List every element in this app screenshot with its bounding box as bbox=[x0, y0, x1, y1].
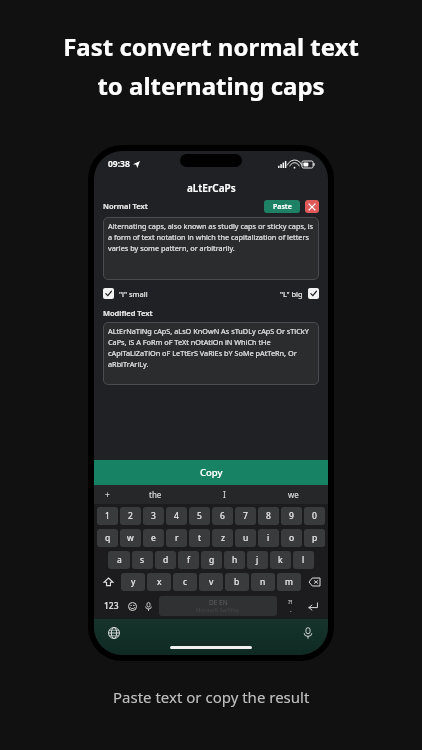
staticText: DE EN bbox=[209, 598, 228, 607]
button[interactable]: 2 bbox=[120, 507, 141, 525]
button[interactable]: i bbox=[258, 529, 279, 547]
button[interactable]: Alternating caps, also known as studly c… bbox=[103, 217, 319, 280]
button[interactable]: b bbox=[225, 573, 249, 591]
staticText: . bbox=[290, 606, 292, 614]
button[interactable]: c bbox=[173, 573, 197, 591]
staticText: u bbox=[243, 532, 249, 544]
button[interactable]: Enter bbox=[300, 596, 324, 616]
button[interactable]: d bbox=[155, 551, 176, 569]
button[interactable]: j bbox=[247, 551, 268, 569]
staticText: 123 bbox=[104, 600, 119, 612]
button[interactable]: v bbox=[199, 573, 223, 591]
button[interactable]: q bbox=[97, 529, 118, 547]
button[interactable]: Shift bbox=[96, 573, 120, 591]
button[interactable]: Paste bbox=[264, 200, 300, 213]
staticText: y bbox=[131, 576, 136, 588]
staticText: 4 bbox=[174, 510, 179, 522]
staticText: to alternating caps bbox=[97, 69, 325, 102]
button[interactable]: t bbox=[189, 529, 210, 547]
button[interactable]: 3 bbox=[143, 507, 164, 525]
button[interactable]: Voice input bbox=[302, 627, 314, 639]
button[interactable]: 1 bbox=[97, 507, 118, 525]
button[interactable]: s bbox=[132, 551, 153, 569]
button[interactable]: p bbox=[304, 529, 325, 547]
button[interactable]: a bbox=[108, 551, 130, 569]
staticText: Microsoft SwiftKey bbox=[196, 607, 240, 614]
staticText: Paste bbox=[273, 202, 292, 212]
staticText: k bbox=[278, 554, 283, 566]
button[interactable]: x bbox=[147, 573, 171, 591]
staticText: h bbox=[232, 554, 238, 566]
button[interactable]: y bbox=[121, 573, 145, 591]
staticText: o bbox=[289, 532, 295, 544]
staticText: 8 bbox=[266, 510, 271, 522]
button[interactable]: Emoji bbox=[124, 596, 140, 616]
button[interactable]: w bbox=[120, 529, 141, 547]
button[interactable]: 6 bbox=[212, 507, 233, 525]
staticText: z bbox=[221, 532, 225, 544]
button[interactable]: u bbox=[235, 529, 256, 547]
button[interactable]: 7 bbox=[235, 507, 256, 525]
staticText: 09:38 bbox=[108, 158, 130, 170]
staticText: 0 bbox=[312, 510, 317, 522]
staticText: t bbox=[198, 532, 202, 544]
button[interactable]: l bbox=[293, 551, 314, 569]
button[interactable]: 4 bbox=[166, 507, 187, 525]
button[interactable]: f bbox=[178, 551, 199, 569]
button[interactable]: DE EN bbox=[159, 596, 277, 616]
staticText: 1 bbox=[105, 510, 110, 522]
staticText: a bbox=[117, 554, 122, 566]
button[interactable]: Clear bbox=[305, 200, 319, 213]
button[interactable]: 8 bbox=[258, 507, 279, 525]
staticText: + bbox=[105, 489, 110, 501]
staticText: "i" small bbox=[119, 289, 148, 299]
button[interactable]: o bbox=[281, 529, 302, 547]
staticText: s bbox=[140, 554, 145, 566]
button[interactable]: h bbox=[224, 551, 245, 569]
staticText: b bbox=[234, 576, 240, 588]
button[interactable]: n bbox=[251, 573, 275, 591]
button[interactable]: m bbox=[277, 573, 301, 591]
staticText: w bbox=[127, 532, 134, 544]
staticText: Alternating caps, also known as studly c… bbox=[108, 221, 314, 253]
staticText: c bbox=[183, 576, 188, 588]
staticText: Fast convert normal text bbox=[63, 30, 359, 63]
staticText: 6 bbox=[220, 510, 225, 522]
button[interactable]: ?! bbox=[280, 596, 300, 616]
staticText: the bbox=[149, 489, 162, 500]
staticText: d bbox=[163, 554, 169, 566]
staticText: 5 bbox=[197, 510, 202, 522]
button[interactable]: 5 bbox=[189, 507, 210, 525]
staticText: g bbox=[209, 554, 215, 566]
staticText: p bbox=[312, 532, 318, 544]
staticText: j bbox=[256, 554, 259, 566]
button[interactable]: 0 bbox=[304, 507, 325, 525]
button[interactable]: z bbox=[212, 529, 233, 547]
staticText: "L" big bbox=[280, 289, 303, 299]
button[interactable]: Copy bbox=[94, 460, 328, 485]
button[interactable]: 9 bbox=[281, 507, 302, 525]
staticText: l bbox=[302, 554, 305, 566]
staticText: x bbox=[157, 576, 162, 588]
staticText: I bbox=[223, 489, 226, 500]
button[interactable]: g bbox=[201, 551, 222, 569]
staticText: m bbox=[285, 576, 293, 588]
button[interactable]: 123 bbox=[98, 596, 124, 616]
button[interactable]: k bbox=[270, 551, 291, 569]
button[interactable]: r bbox=[166, 529, 187, 547]
staticText: q bbox=[105, 532, 111, 544]
button[interactable]: ALtErNaTiNg cApS, aLsO KnOwN As sTuDLy c… bbox=[103, 322, 319, 385]
staticText: Paste text or copy the result bbox=[113, 687, 310, 707]
staticText: 2 bbox=[128, 510, 133, 522]
button[interactable]: Language bbox=[108, 627, 120, 639]
button[interactable]: "i" small checkbox bbox=[103, 288, 114, 299]
button[interactable]: we bbox=[259, 485, 328, 504]
button[interactable]: + bbox=[94, 485, 120, 504]
button[interactable]: Voice input bbox=[140, 596, 156, 616]
button[interactable]: Backspace bbox=[302, 573, 326, 591]
button[interactable]: e bbox=[143, 529, 164, 547]
staticText: Copy bbox=[200, 466, 223, 479]
button[interactable]: "L" big checkbox bbox=[308, 288, 319, 299]
button[interactable]: the bbox=[120, 485, 190, 504]
button[interactable]: I bbox=[190, 485, 259, 504]
